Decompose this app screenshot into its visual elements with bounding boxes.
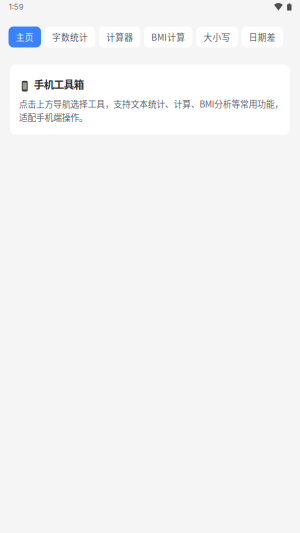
- staticText: 计算器: [106, 31, 133, 43]
- button[interactable]: BMI计算: [144, 26, 193, 47]
- staticText: 字数统计: [52, 31, 88, 43]
- button[interactable]: 日期差: [241, 26, 283, 47]
- button[interactable]: 主页: [8, 26, 41, 47]
- staticText: 1:59: [9, 2, 24, 12]
- button[interactable]: 大小写: [196, 26, 238, 47]
- staticText: 大小写: [204, 31, 231, 43]
- button[interactable]: 计算器: [99, 26, 140, 47]
- staticText: BMI计算: [151, 31, 185, 43]
- staticText: 手机工具箱: [34, 76, 84, 91]
- button[interactable]: 字数统计: [45, 26, 95, 47]
- staticText: 点击上方导航选择工具，支持文本统计、计算、BMI分析等常用功能，适配手机端操作。: [19, 97, 283, 124]
- staticText: 主页: [16, 31, 34, 43]
- staticText: 日期差: [249, 31, 276, 43]
